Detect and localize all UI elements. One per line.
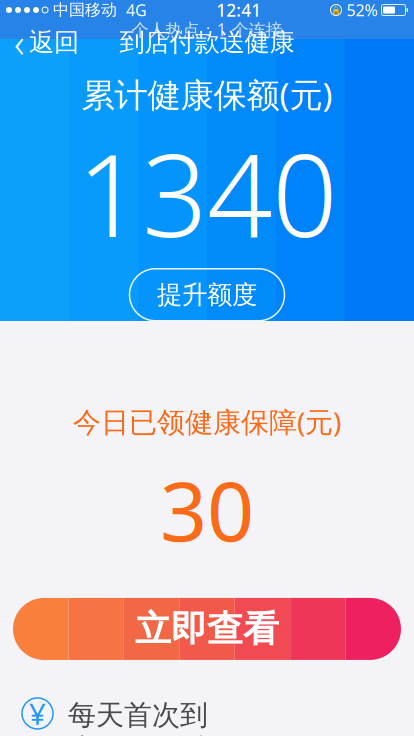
staticText: 个人热点：1 个连接 [131,18,282,41]
staticText: 52% [346,0,377,21]
staticText: 🔒 [331,5,341,14]
staticText: 每天首次到店付款可以领取免费健康保障金额，最高可累积至5000元。 [68,698,216,736]
staticText: 中国移动 [53,0,117,20]
staticText: 累计健康保额(元) [81,72,332,116]
staticText: 30 [160,454,254,564]
staticText: 提升额度 [157,279,257,310]
staticText: 到店付款送健康 [119,27,294,58]
staticText: 12:41 [216,0,261,21]
button[interactable]: ‹ [4,20,89,64]
staticText: 1340 [77,116,337,269]
staticText: ¥ [29,694,46,733]
staticText: ‹ [14,16,25,69]
button[interactable]: 立即查看 [0,598,414,660]
button[interactable]: 提升额度 [129,269,284,321]
staticText: 立即查看 [135,607,279,651]
staticText: 4G [126,0,147,21]
staticText: 今日已领健康保障(元) [73,403,341,440]
staticText: 返回 [29,27,79,58]
